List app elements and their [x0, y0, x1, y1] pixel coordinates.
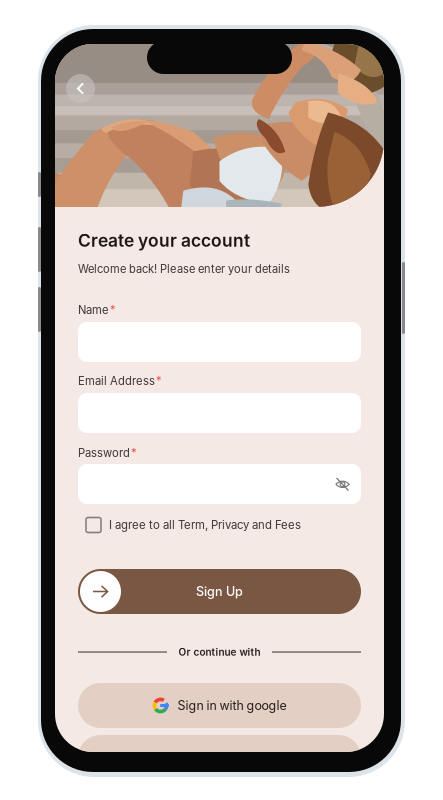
button[interactable]: [78, 735, 361, 780]
button[interactable]: I agree to all Term, Privacy and Fees: [86, 514, 361, 536]
staticText: Or continue with: [178, 646, 260, 658]
staticText: Password: [78, 446, 130, 460]
staticText: Name: [78, 303, 109, 317]
staticText: *: [156, 374, 162, 388]
staticText: Welcome back! Please enter your details: [78, 262, 290, 276]
button[interactable]: Sign Up: [78, 569, 361, 614]
staticText: *: [110, 303, 116, 317]
staticText: Create your account: [78, 230, 250, 251]
button[interactable]: Sign in with google: [78, 683, 361, 728]
staticText: Sign in with google: [177, 698, 286, 713]
staticText: Sign Up: [196, 584, 243, 599]
staticText: Email Address: [78, 374, 155, 388]
staticText: I agree to all Term, Privacy and Fees: [109, 518, 301, 532]
button[interactable]: Back: [66, 74, 95, 103]
staticText: *: [131, 446, 137, 460]
